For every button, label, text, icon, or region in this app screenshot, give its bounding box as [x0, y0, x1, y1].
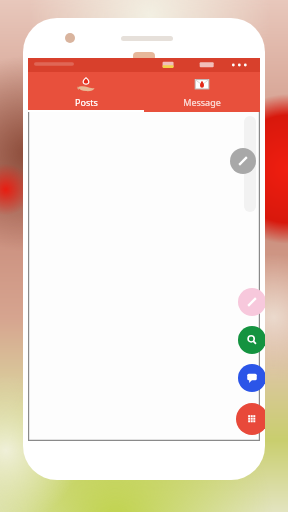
button[interactable]: Apps [236, 403, 265, 435]
button[interactable]: Edit [230, 148, 256, 174]
button[interactable]: Message [144, 72, 260, 108]
button[interactable]: Drawer handle [244, 116, 256, 212]
button[interactable]: Search [238, 326, 265, 354]
staticText: Posts [75, 96, 98, 108]
staticText: Message [183, 96, 221, 108]
button[interactable]: Messages [238, 364, 265, 392]
button[interactable]: Compose [238, 288, 265, 316]
button[interactable]: Posts [28, 72, 144, 108]
